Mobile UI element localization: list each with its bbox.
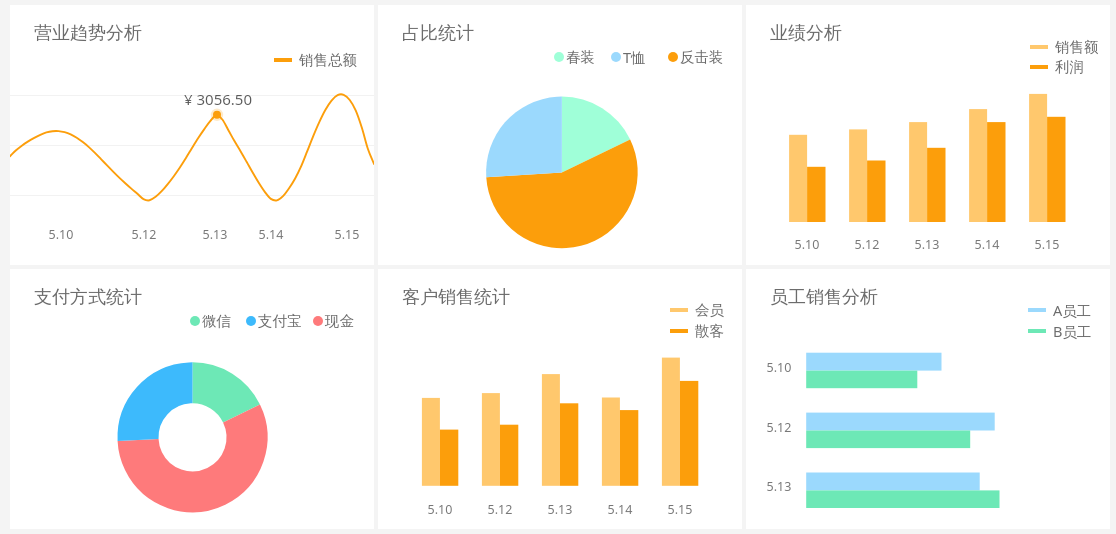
staticText: 利润 [1055, 58, 1084, 76]
button[interactable]: 微信 [190, 310, 231, 332]
button[interactable]: 业绩分析 [746, 5, 1110, 265]
staticText: 5.14 [254, 226, 288, 243]
staticText: 现金 [325, 312, 354, 330]
staticText: 5.15 [330, 226, 364, 243]
staticText: 5.15 [1030, 236, 1064, 253]
staticText: 5.10 [790, 236, 824, 253]
button[interactable]: 员工销售分析 [746, 269, 1110, 529]
staticText: 5.12 [483, 501, 517, 518]
button[interactable]: 春装 [554, 46, 595, 68]
staticText: 会员 [695, 301, 724, 319]
staticText: 散客 [695, 322, 724, 340]
button[interactable]: 散客 [670, 320, 724, 342]
staticText: 销售额 [1055, 38, 1099, 56]
staticText: 5.10 [44, 226, 78, 243]
button[interactable]: 现金 [313, 310, 354, 332]
staticText: ¥ 3056.50 [184, 89, 252, 109]
button[interactable]: 支付方式统计 [10, 269, 374, 529]
staticText: 5.13 [755, 478, 803, 495]
staticText: 占比统计 [402, 22, 474, 45]
staticText: 5.15 [663, 501, 697, 518]
staticText: A员工 [1053, 300, 1092, 320]
staticText: 5.12 [127, 226, 161, 243]
staticText: B员工 [1053, 321, 1092, 341]
staticText: 员工销售分析 [770, 286, 878, 309]
button[interactable]: 反击装 [668, 46, 724, 68]
staticText: 5.13 [543, 501, 577, 518]
staticText: 5.12 [755, 419, 803, 436]
staticText: 销售总额 [299, 51, 357, 69]
button[interactable]: 占比统计 [378, 5, 742, 265]
staticText: 5.14 [970, 236, 1004, 253]
button[interactable]: 销售总额 [274, 49, 357, 71]
staticText: 5.10 [423, 501, 457, 518]
button[interactable]: 客户销售统计 [378, 269, 742, 529]
staticText: 5.13 [910, 236, 944, 253]
staticText: 5.13 [198, 226, 232, 243]
staticText: 微信 [202, 312, 231, 330]
button[interactable]: B员工 [1028, 320, 1092, 342]
button[interactable]: T恤 [611, 46, 646, 68]
staticText: T恤 [623, 47, 646, 67]
staticText: 反击装 [680, 48, 724, 66]
staticText: 5.12 [850, 236, 884, 253]
staticText: 春装 [566, 48, 595, 66]
button[interactable]: 销售额 [1030, 36, 1099, 58]
staticText: 业绩分析 [770, 22, 842, 45]
staticText: 客户销售统计 [402, 286, 510, 309]
staticText: 支付宝 [258, 312, 302, 330]
button[interactable]: 会员 [670, 299, 724, 321]
staticText: 5.10 [755, 359, 803, 376]
button[interactable]: 支付宝 [246, 310, 302, 332]
button[interactable]: A员工 [1028, 299, 1092, 321]
button[interactable]: 利润 [1030, 56, 1084, 78]
button[interactable]: 营业趋势分析 [10, 5, 374, 265]
staticText: 5.14 [603, 501, 637, 518]
staticText: 支付方式统计 [34, 286, 142, 309]
staticText: 营业趋势分析 [34, 22, 142, 45]
